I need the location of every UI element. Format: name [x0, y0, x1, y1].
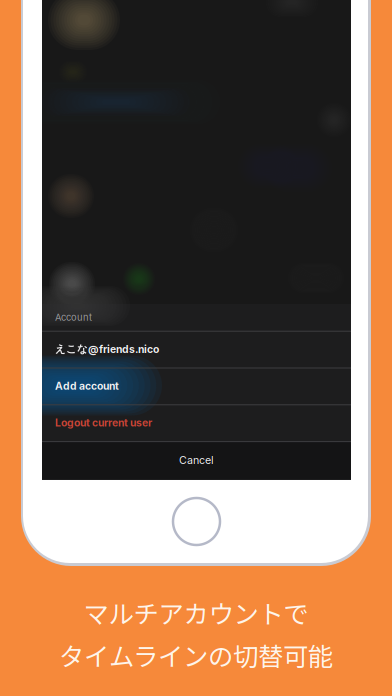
button[interactable]: えこな@friends.nico — [42, 331, 351, 367]
staticText: Logout current user — [55, 416, 152, 429]
button[interactable]: Add account — [42, 367, 351, 404]
staticText: Cancel — [179, 454, 214, 466]
staticText: Add account — [55, 380, 119, 392]
staticText: えこな@friends.nico — [55, 342, 159, 356]
staticText: タイムラインの切替可能 — [59, 637, 333, 673]
button[interactable]: Logout current user — [42, 404, 351, 441]
staticText: Account — [55, 312, 92, 323]
button[interactable]: Cancel — [42, 441, 351, 479]
staticText: マルチアカウントで — [83, 594, 308, 631]
